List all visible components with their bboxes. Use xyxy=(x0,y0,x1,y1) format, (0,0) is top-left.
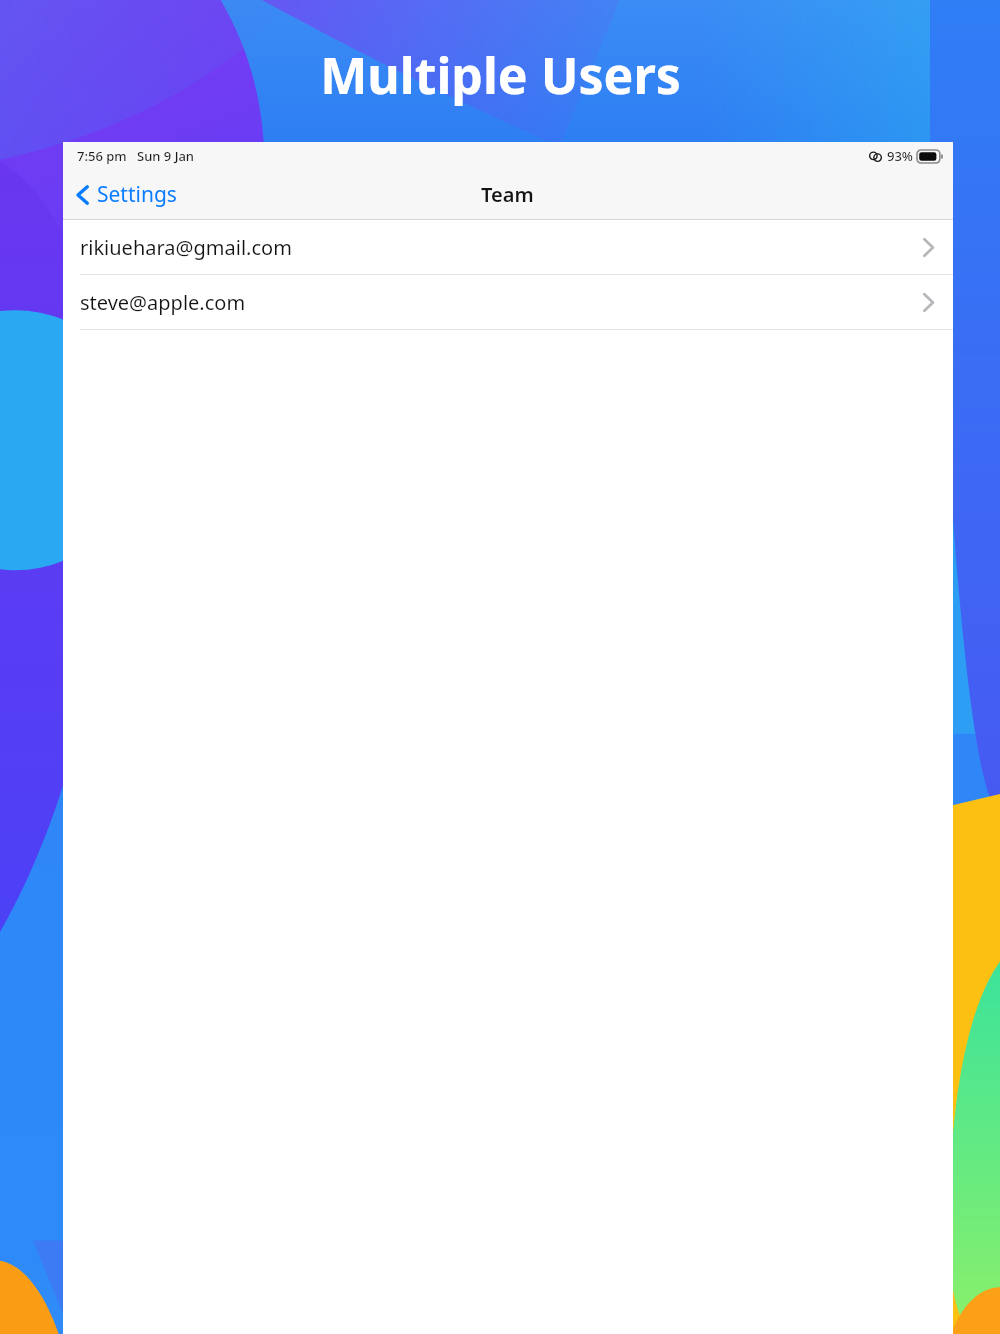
staticText: 93% xyxy=(887,147,913,165)
staticText: 7:56 pm xyxy=(77,147,127,165)
staticText: Sun 9 Jan xyxy=(137,147,195,165)
staticText: rikiuehara@gmail.com xyxy=(80,234,292,261)
button[interactable]: Settings xyxy=(63,174,189,215)
button[interactable]: rikiuehara@gmail.com xyxy=(63,220,953,275)
staticText: steve@apple.com xyxy=(80,289,246,316)
staticText: Settings xyxy=(97,180,177,209)
button[interactable]: steve@apple.com xyxy=(63,275,953,330)
staticText: Multiple Users xyxy=(320,41,681,109)
staticText: Team xyxy=(481,181,534,208)
